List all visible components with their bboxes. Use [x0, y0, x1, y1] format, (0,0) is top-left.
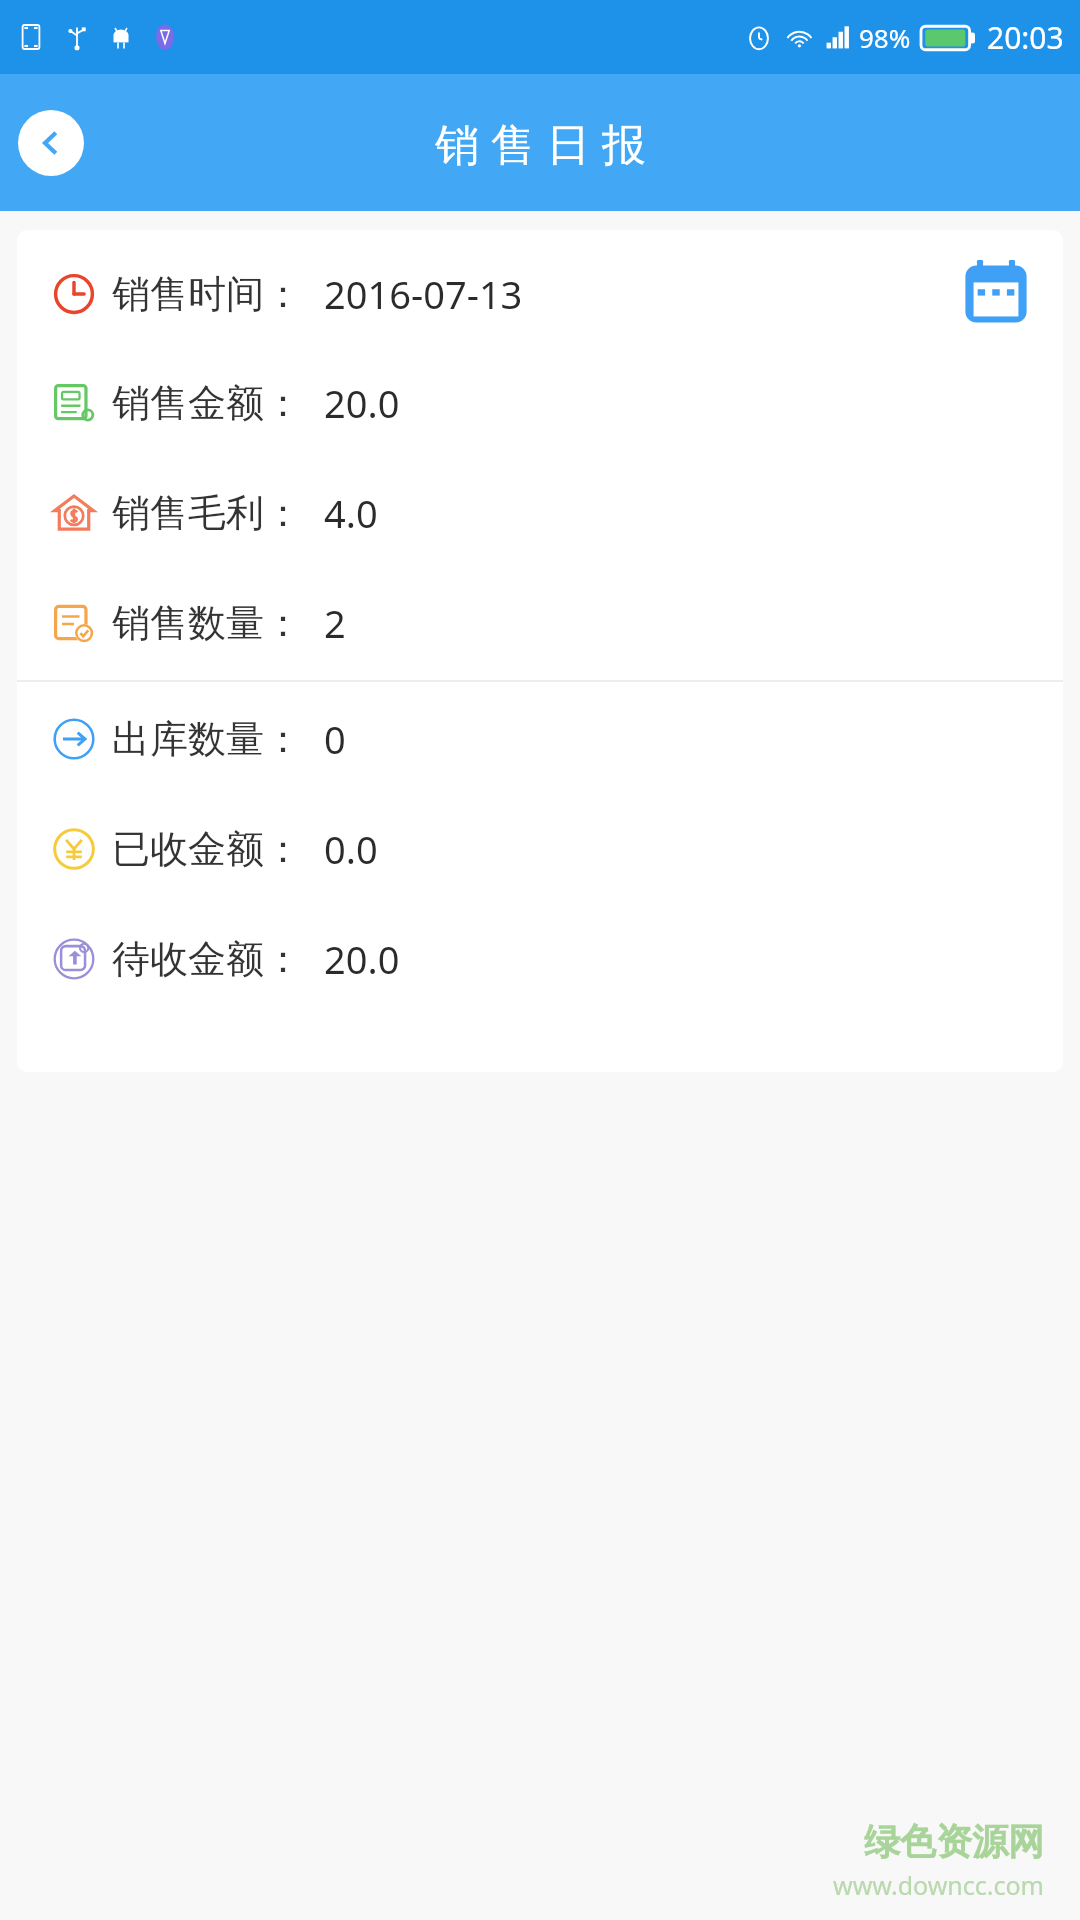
staticText: 出库数量：	[112, 715, 302, 763]
staticText: 绿色资源网	[864, 1819, 1044, 1864]
staticText: 销售金额：	[112, 379, 302, 427]
button[interactable]: 销售毛利：	[17, 458, 1063, 568]
staticText: 销 售 日 报	[435, 113, 646, 173]
staticText: 销售数量：	[112, 599, 302, 647]
staticText: 2	[324, 597, 346, 649]
staticText: 0	[324, 713, 346, 765]
button[interactable]: 已收金额：	[17, 794, 1063, 904]
button[interactable]: 销售时间：	[17, 240, 1063, 348]
button[interactable]: 销售金额：	[17, 348, 1063, 458]
button[interactable]: 出库数量：	[17, 684, 1063, 794]
staticText: 20:03	[987, 17, 1064, 58]
button[interactable]: Pick date	[959, 257, 1033, 331]
staticText: 待收金额：	[112, 935, 302, 983]
staticText: 已收金额：	[112, 825, 302, 873]
staticText: 98%	[859, 20, 911, 55]
button[interactable]: 销售数量：	[17, 568, 1063, 678]
button[interactable]: Back	[18, 110, 84, 176]
staticText: www.downcc.com	[833, 1868, 1044, 1902]
staticText: 销售毛利：	[112, 489, 302, 537]
staticText: 4.0	[324, 487, 378, 539]
staticText: 销售时间：	[112, 270, 302, 318]
button[interactable]: 待收金额：	[17, 904, 1063, 1014]
staticText: 20.0	[324, 377, 400, 429]
staticText: 2016-07-13	[324, 268, 523, 320]
staticText: 20.0	[324, 933, 400, 985]
staticText: 0.0	[324, 823, 378, 875]
